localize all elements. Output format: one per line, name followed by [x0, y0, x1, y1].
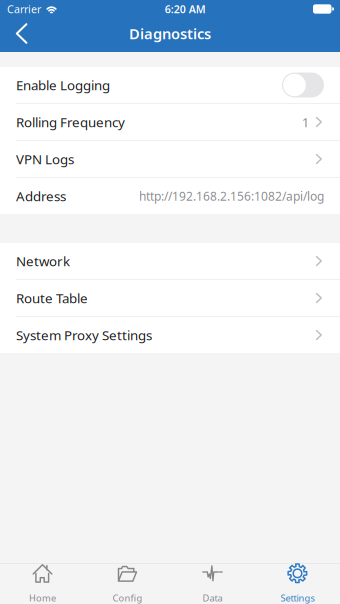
button[interactable]: Rolling Frequency [0, 104, 340, 140]
staticText: http://192.168.2.156:1082/api/log [139, 188, 324, 204]
button[interactable]: System Proxy Settings [0, 317, 340, 353]
button[interactable]: Home [0, 563, 85, 604]
staticText: VPN Logs [16, 150, 74, 168]
button[interactable]: Config [85, 563, 170, 604]
staticText: Address [16, 187, 66, 205]
staticText: Diagnostics [129, 24, 211, 43]
button[interactable]: Settings [255, 563, 340, 604]
button[interactable]: Route Table [0, 280, 340, 316]
button[interactable]: VPN Logs [0, 141, 340, 177]
button[interactable]: Back [0, 18, 38, 52]
staticText: Config [112, 592, 142, 604]
staticText: Rolling Frequency [16, 113, 125, 131]
staticText: Home [29, 592, 56, 604]
staticText: Route Table [16, 289, 88, 307]
staticText: Settings [280, 592, 314, 604]
staticText: Data [202, 592, 222, 604]
staticText: Carrier [7, 2, 41, 16]
staticText: 6:20 AM [165, 2, 206, 16]
staticText: System Proxy Settings [16, 326, 152, 344]
button[interactable]: Data [170, 563, 255, 604]
staticText: Enable Logging [16, 76, 110, 94]
staticText: Network [16, 252, 70, 270]
button[interactable]: Enable Logging [282, 72, 324, 97]
button[interactable]: Network [0, 243, 340, 279]
staticText: 1 [302, 113, 310, 131]
